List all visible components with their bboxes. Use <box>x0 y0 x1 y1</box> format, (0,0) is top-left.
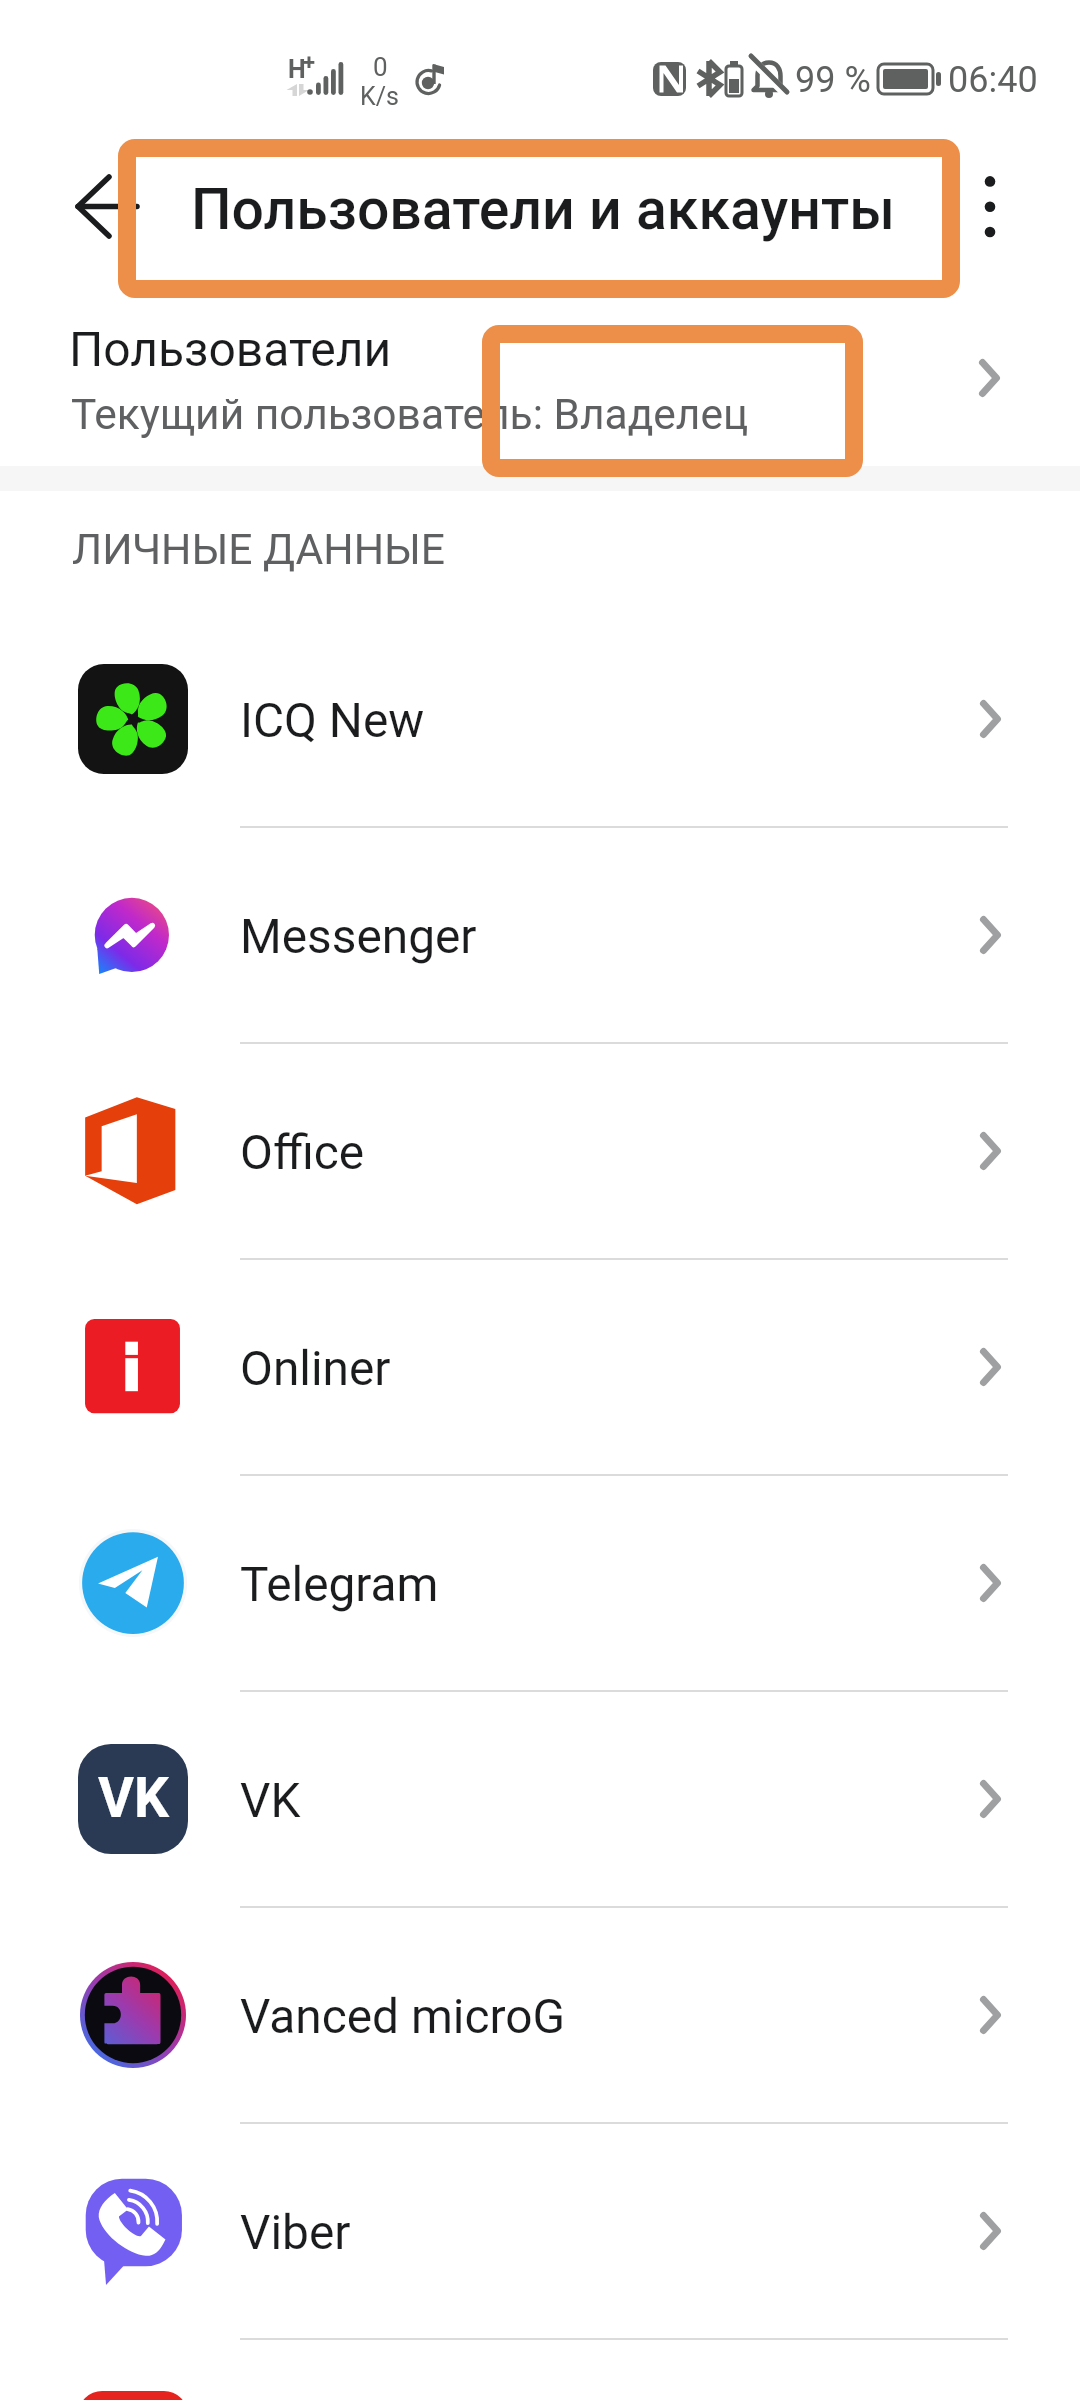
button[interactable]: Vanced microG <box>0 1907 1080 2123</box>
button[interactable]: Telegram <box>0 1475 1080 1691</box>
staticText: Viber <box>240 2205 351 2261</box>
staticText: Telegram <box>240 1557 439 1613</box>
staticText: Vanced microG <box>240 1989 566 2045</box>
staticText: 99 % <box>795 59 871 101</box>
staticText: Пользователи и аккаунты <box>191 176 895 243</box>
staticText: H <box>288 55 306 84</box>
button[interactable]: ICQ New <box>0 611 1080 827</box>
staticText: Пользователи <box>69 321 392 377</box>
button[interactable]: Messenger <box>0 827 1080 1043</box>
staticText: Onliner <box>240 1341 391 1397</box>
button[interactable]: Back <box>30 157 150 277</box>
staticText: ЛИЧНЫЕ ДАННЫЕ <box>72 524 446 574</box>
staticText: VK <box>240 1773 301 1829</box>
staticText: + <box>303 50 316 76</box>
button[interactable]: Viber <box>0 2123 1080 2339</box>
staticText: 06:40 <box>948 59 1038 101</box>
staticText: Текущий пользователь: Владелец <box>71 390 749 440</box>
staticText: Office <box>240 1125 365 1181</box>
staticText: ICQ New <box>240 693 425 749</box>
staticText: VK <box>98 1766 169 1830</box>
button[interactable]: VK <box>0 1691 1080 1907</box>
button[interactable]: Пользователи <box>0 298 1080 466</box>
button[interactable]: Office <box>0 1043 1080 1259</box>
staticText: Messenger <box>240 909 477 965</box>
button[interactable]: More options <box>940 151 1040 251</box>
staticText: K/s <box>360 82 399 111</box>
button[interactable]: Onliner <box>0 1259 1080 1475</box>
staticText: 0 <box>373 52 388 82</box>
